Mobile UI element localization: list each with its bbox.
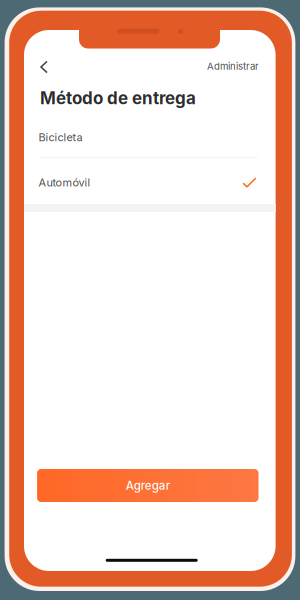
staticText: Agregar [126, 478, 170, 492]
button[interactable]: Automóvil [24, 159, 276, 206]
staticText: Administrar [207, 60, 259, 72]
button[interactable]: Agregar [37, 469, 258, 502]
staticText: Bicicleta [38, 130, 82, 144]
staticText: Método de entrega [40, 88, 196, 108]
staticText: Automóvil [38, 176, 90, 189]
button[interactable]: Bicicleta [24, 118, 276, 156]
button[interactable]: Administrar [188, 59, 259, 73]
button[interactable]: Back [33, 56, 55, 78]
